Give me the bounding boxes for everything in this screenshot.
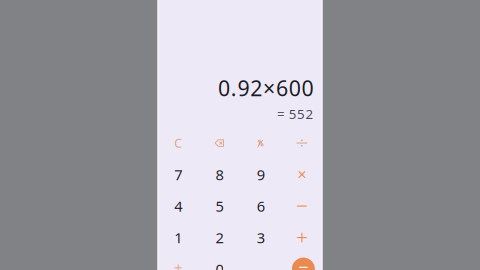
button[interactable]: Divide [281,127,322,159]
staticText: 3 [257,228,265,247]
staticText: 1 [174,228,182,247]
button[interactable]: 0 [199,253,240,270]
staticText: 6 [257,196,265,216]
staticText: 9 [257,165,265,184]
button[interactable]: Minus [281,190,322,222]
staticText: = 552 [277,105,313,123]
staticText: 0.92×600 [218,74,313,102]
button[interactable]: Plus [281,222,322,253]
button[interactable]: Delete [199,127,240,159]
button[interactable]: 3 [240,222,281,253]
button[interactable]: 9 [240,159,281,190]
staticText: 2 [215,228,223,247]
staticText: 5 [215,196,223,216]
button[interactable]: 2 [199,222,240,253]
staticText: C [174,135,182,151]
button[interactable]: 8 [199,159,240,190]
button[interactable]: 4 [157,190,199,222]
button[interactable]: Clear [157,127,199,159]
button[interactable]: Percent [240,127,281,159]
staticText: 4 [174,196,182,216]
staticText: 0 [215,259,223,270]
button[interactable]: 6 [240,190,281,222]
staticText: 8 [215,165,223,184]
button[interactable]: 5 [199,190,240,222]
staticText: 7 [174,165,182,184]
button[interactable]: Equals [281,253,322,270]
button[interactable]: 1 [157,222,199,253]
button[interactable]: Toggle sign [157,253,199,270]
button[interactable]: Multiply [281,159,322,190]
button[interactable]: 7 [157,159,199,190]
